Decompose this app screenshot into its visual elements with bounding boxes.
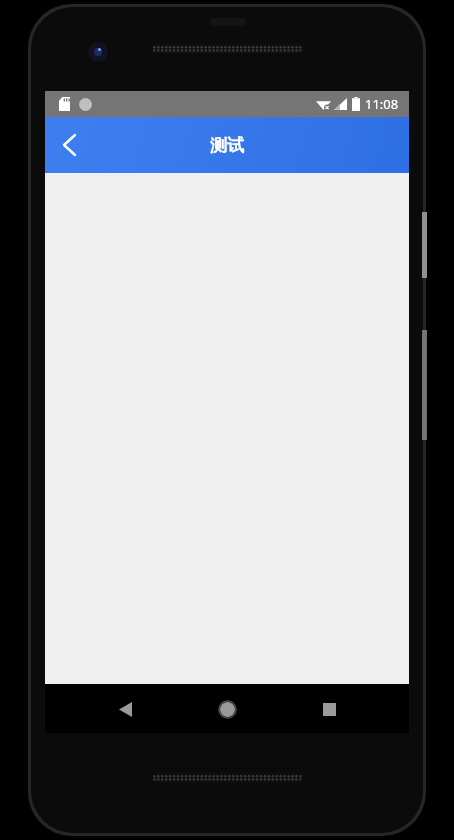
button[interactable]: Back — [45, 121, 93, 169]
button[interactable]: Back — [103, 687, 147, 731]
staticText: 测试 — [210, 135, 244, 156]
staticText: 11:08 — [365, 95, 399, 113]
button[interactable]: Home — [205, 687, 249, 731]
button[interactable]: Recent apps — [307, 687, 351, 731]
